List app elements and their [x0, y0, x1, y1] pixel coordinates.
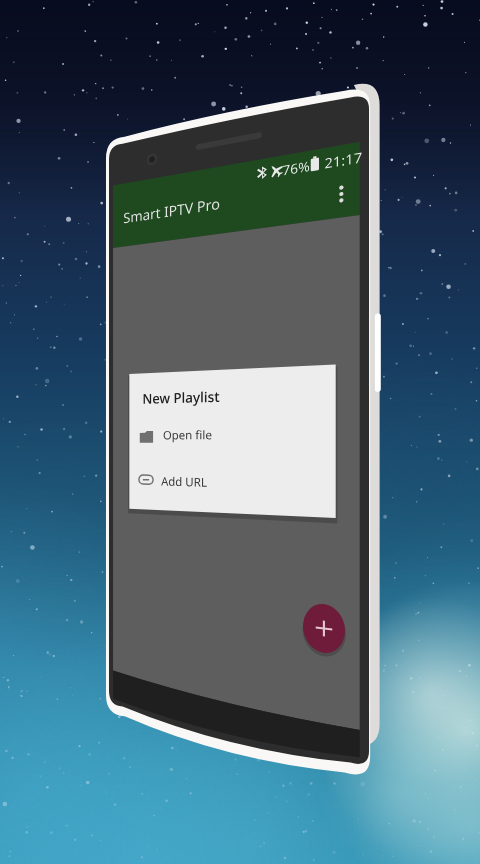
button[interactable]: More options	[330, 176, 356, 206]
button[interactable]: Open file	[131, 414, 337, 460]
button[interactable]: Smart IPTV Pro	[122, 179, 354, 241]
button[interactable]: New playlist	[301, 603, 347, 655]
button[interactable]: Add URL	[131, 460, 337, 510]
